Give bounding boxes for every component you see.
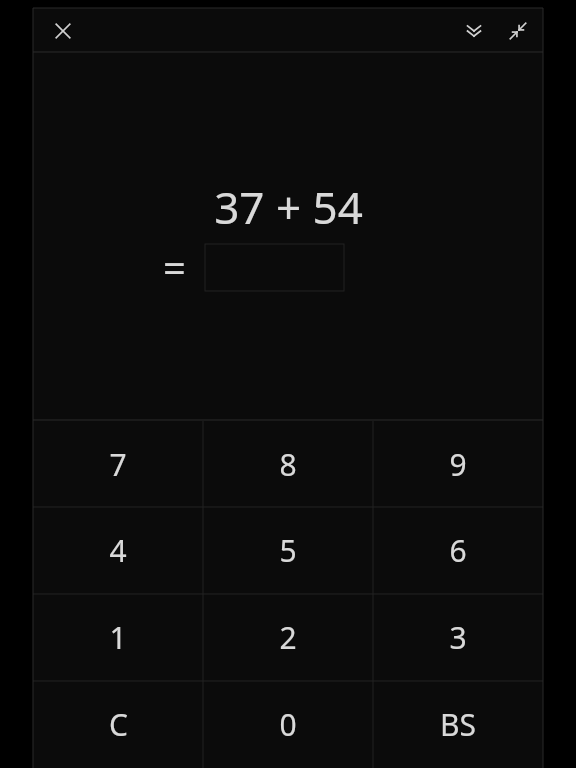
staticText: 8 bbox=[279, 444, 297, 485]
button[interactable]: Minimize bbox=[496, 9, 540, 53]
staticText: 4 bbox=[109, 530, 127, 571]
button[interactable]: 3 bbox=[373, 594, 543, 681]
button[interactable]: 9 bbox=[373, 421, 543, 507]
staticText: 5 bbox=[279, 530, 297, 571]
staticText: 1 bbox=[109, 617, 127, 658]
staticText: 3 bbox=[449, 617, 467, 658]
staticText: = bbox=[163, 240, 186, 294]
button[interactable]: 7 bbox=[33, 421, 203, 507]
button[interactable]: 4 bbox=[33, 507, 203, 594]
staticText: 0 bbox=[279, 704, 297, 745]
staticText: 9 bbox=[449, 444, 467, 485]
staticText: C bbox=[109, 704, 128, 745]
button[interactable]: Collapse keyboard bbox=[452, 9, 496, 53]
button[interactable]: 6 bbox=[373, 507, 543, 594]
button[interactable]: 2 bbox=[203, 594, 373, 681]
button[interactable]: 8 bbox=[203, 421, 373, 507]
button[interactable]: BS bbox=[373, 681, 543, 768]
staticText: 37 + 54 bbox=[214, 177, 363, 237]
button[interactable]: C bbox=[33, 681, 203, 768]
button[interactable]: 0 bbox=[203, 681, 373, 768]
staticText: 7 bbox=[109, 444, 127, 485]
button[interactable]: 1 bbox=[33, 594, 203, 681]
button[interactable]: 5 bbox=[203, 507, 373, 594]
staticText: BS bbox=[440, 704, 476, 745]
button[interactable]: Close bbox=[41, 9, 85, 53]
staticText: 6 bbox=[449, 530, 467, 571]
staticText: 2 bbox=[279, 617, 297, 658]
